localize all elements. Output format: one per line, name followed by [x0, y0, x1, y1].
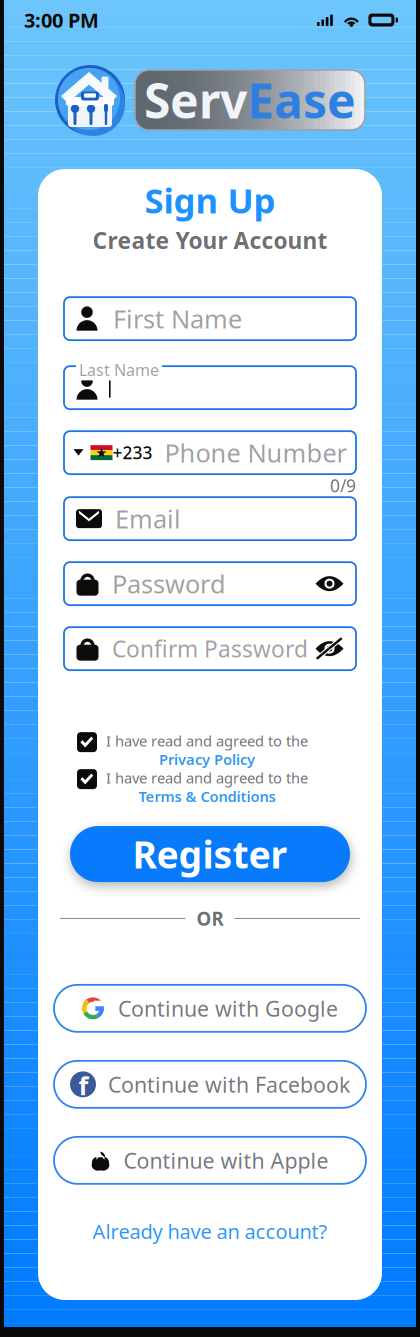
staticText: Already have an account?: [92, 1218, 327, 1244]
button[interactable]: f: [54, 1061, 366, 1108]
button[interactable]: Password: [64, 562, 356, 605]
staticText: 3:00 PM: [24, 7, 99, 33]
staticText: Ease: [247, 68, 356, 132]
button[interactable]: Register: [70, 826, 350, 882]
staticText: Phone Number: [164, 436, 346, 469]
staticText: Email: [115, 502, 181, 535]
button[interactable]: Last Name: [64, 366, 356, 409]
staticText: Password: [112, 567, 226, 600]
staticText: f: [78, 1068, 88, 1102]
staticText: Create Your Account: [92, 225, 327, 255]
staticText: Confirm Password: [112, 634, 308, 664]
staticText: 0/9: [330, 474, 356, 497]
staticText: Last Name: [79, 359, 159, 380]
staticText: +233: [112, 441, 152, 464]
button[interactable]: Confirm Password: [64, 627, 356, 670]
staticText: Serv: [144, 68, 247, 132]
button[interactable]: I have read and agreed to the: [77, 768, 343, 806]
staticText: I have read and agreed to the: [106, 731, 308, 751]
button[interactable]: +233: [64, 431, 356, 474]
button[interactable]: Continue with Apple: [54, 1137, 366, 1184]
staticText: Continue with Facebook: [108, 1070, 350, 1098]
button[interactable]: Continue with Google: [54, 985, 366, 1032]
staticText: Terms & Conditions: [138, 787, 275, 806]
staticText: Continue with Apple: [123, 1146, 328, 1174]
staticText: Privacy Policy: [159, 750, 255, 769]
staticText: Sign Up: [144, 177, 275, 223]
button[interactable]: Email: [64, 497, 356, 540]
button[interactable]: I have read and agreed to the: [77, 731, 343, 769]
button[interactable]: First Name: [64, 297, 356, 340]
staticText: Register: [132, 829, 287, 879]
staticText: First Name: [113, 302, 242, 335]
staticText: OR: [196, 906, 223, 931]
staticText: I have read and agreed to the: [106, 768, 308, 788]
button[interactable]: Already have an account?: [92, 1218, 327, 1244]
staticText: Continue with Google: [118, 994, 338, 1022]
